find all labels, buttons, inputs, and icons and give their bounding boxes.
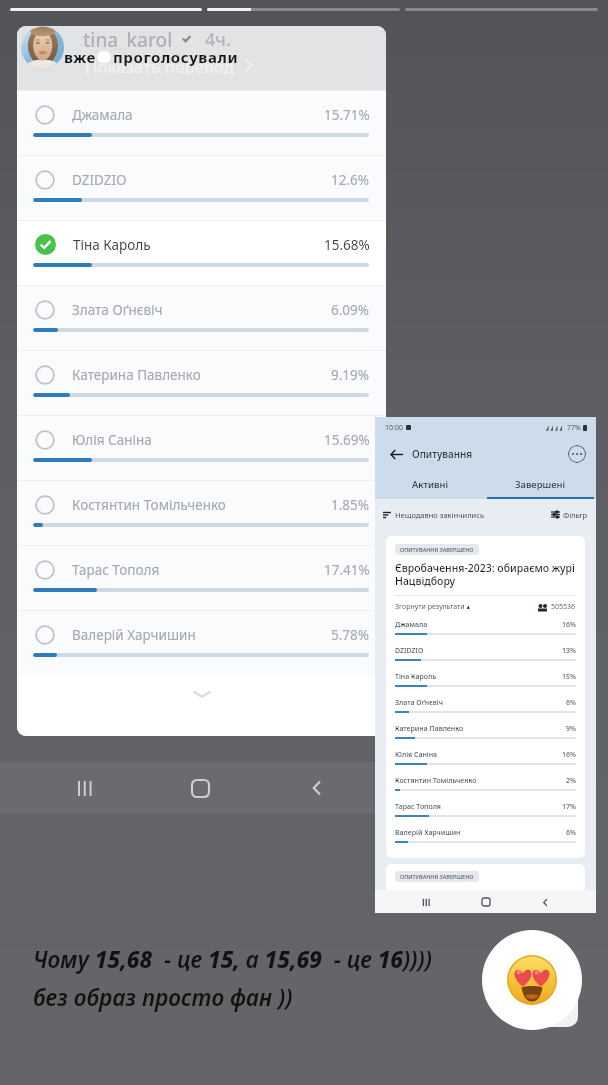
button[interactable]: Костянтин Томільченко — [17, 480, 386, 545]
staticText: 15.71% — [324, 106, 370, 124]
staticText: Активні — [412, 478, 449, 491]
staticText: Фільтр — [563, 510, 588, 520]
staticText: 16% — [562, 750, 576, 760]
staticText: 17.41% — [324, 561, 370, 579]
staticText: Костянтин Томільченко — [72, 496, 226, 514]
staticText: Євробачення-2023: обираємо журі Нацвідбо… — [395, 561, 576, 588]
staticText: Юлія Саніна — [72, 431, 152, 449]
staticText: Костянтин Томільченко — [395, 776, 477, 786]
button[interactable]: Home — [477, 893, 495, 911]
staticText: Злата Оґнєвіч — [395, 698, 443, 708]
button[interactable]: Катерина Павленко — [17, 350, 386, 415]
button[interactable]: Юлія Саніна — [17, 415, 386, 480]
button[interactable]: More options — [568, 445, 586, 463]
button[interactable]: Тіна Кароль — [17, 220, 386, 285]
button[interactable]: Тарас Тополя — [395, 798, 576, 824]
staticText: 4ч. — [205, 27, 231, 49]
staticText: Опитування — [412, 447, 473, 461]
staticText: Тіна Кароль — [73, 236, 151, 254]
button[interactable]: Recent apps — [417, 893, 435, 911]
staticText: DZIDZIO — [72, 171, 127, 189]
staticText: 15.69% — [324, 431, 370, 449]
staticText: 15% — [562, 672, 576, 682]
staticText: Тіна Кароль — [395, 672, 437, 682]
button[interactable]: Тіна Кароль — [395, 668, 576, 694]
staticText: Тарас Тополя — [72, 561, 160, 579]
staticText: 2% — [566, 776, 576, 786]
staticText: 9.19% — [331, 366, 370, 384]
staticText: Катерина Павленко — [395, 724, 464, 734]
staticText: Джамала — [395, 620, 428, 630]
button[interactable]: Джамала — [17, 90, 386, 155]
button[interactable]: Катерина Павленко — [395, 720, 576, 746]
staticText: 17% — [562, 802, 576, 812]
button[interactable]: DZIDZIO — [395, 642, 576, 668]
button[interactable]: Завершені — [485, 469, 596, 499]
staticText: Тарас Тополя — [395, 802, 441, 812]
button[interactable]: Джамала — [395, 616, 576, 642]
staticText: 5.78% — [331, 626, 370, 644]
button[interactable]: Костянтин Томільченко — [395, 772, 576, 798]
staticText: Згорнути результати ▴ — [395, 602, 470, 612]
staticText: 9% — [566, 724, 576, 734]
staticText: 6% — [566, 698, 576, 708]
staticText: 13% — [562, 646, 576, 656]
button[interactable]: Злата Оґнєвіч — [395, 694, 576, 720]
staticText: Злата Оґнєвіч — [72, 301, 163, 319]
button[interactable]: Валерій Харчишин — [395, 824, 576, 850]
staticText: 12.6% — [331, 171, 370, 189]
button[interactable]: Юлія Саніна — [395, 746, 576, 772]
staticText: Юлія Саніна — [395, 750, 438, 760]
button[interactable]: Back — [388, 446, 404, 462]
staticText: Завершені — [515, 478, 566, 491]
button[interactable]: Злата Оґнєвіч — [17, 285, 386, 350]
staticText: DZIDZIO — [395, 646, 424, 656]
button[interactable]: Активні — [375, 469, 485, 499]
staticText: Валерій Харчишин — [395, 828, 461, 838]
staticText: Валерій Харчишин — [72, 626, 196, 644]
staticText: без образ просто фан )) — [33, 982, 293, 1013]
button[interactable]: DZIDZIO — [17, 155, 386, 220]
staticText: tina_karol — [83, 27, 173, 49]
staticText: Катерина Павленко — [72, 366, 201, 384]
staticText: Показать перевод — [85, 55, 235, 75]
staticText: проголосували — [113, 47, 239, 66]
staticText: 6% — [566, 828, 576, 838]
staticText: ОПИТУВАННЯ ЗАВЕРШЕНО — [400, 546, 474, 553]
staticText: 15.68% — [324, 236, 370, 254]
staticText: 16% — [562, 620, 576, 630]
button[interactable]: Тарас Тополя — [17, 545, 386, 610]
staticText: 77% — [567, 423, 581, 433]
staticText: Чому 15,68 - це 15, а 15,69 - це 16)))) — [33, 944, 433, 975]
staticText: ОПИТУВАННЯ ЗАВЕРШЕНО — [400, 873, 474, 880]
button[interactable]: Back — [297, 768, 337, 808]
button[interactable]: Валерій Харчишин — [17, 610, 386, 675]
staticText: вже — [64, 47, 96, 66]
staticText: 1.85% — [331, 496, 370, 514]
button[interactable]: Recent apps — [65, 768, 105, 808]
staticText: 10:00 — [385, 423, 403, 433]
button[interactable]: Back — [536, 893, 554, 911]
staticText: 6.09% — [331, 301, 370, 319]
staticText: Джамала — [72, 106, 133, 124]
button[interactable]: Home — [180, 768, 220, 808]
staticText: Нещодавно закінчились — [395, 510, 485, 520]
staticText: 505536 — [551, 602, 576, 612]
